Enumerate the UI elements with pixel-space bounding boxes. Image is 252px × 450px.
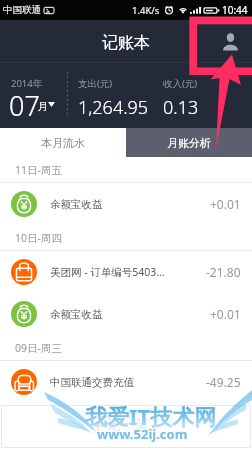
staticText: 2014年 xyxy=(11,77,43,90)
button[interactable]: 余额宝收益 xyxy=(0,293,252,335)
staticText: +0.01 xyxy=(210,306,241,322)
staticText: 07 xyxy=(9,87,40,124)
staticText: 本月流水 xyxy=(41,136,85,150)
staticText: 0.13 xyxy=(163,95,199,120)
staticText: -49.25 xyxy=(206,374,241,390)
button[interactable]: 月账分析 xyxy=(126,128,252,157)
staticText: 中国联通 xyxy=(3,4,41,16)
staticText: -21.80 xyxy=(206,264,241,280)
button[interactable]: 中国联通交费充值 xyxy=(0,361,252,403)
button[interactable]: 余额宝收益 xyxy=(0,183,252,225)
staticText: 11日-周五 xyxy=(15,163,62,177)
staticText: 余额宝收益 xyxy=(50,198,210,211)
staticText: 1.4K/s xyxy=(132,4,160,17)
staticText: 1,264.95 xyxy=(78,95,149,120)
staticText: 中国联通交费充值 xyxy=(50,376,206,389)
staticText: 10:44 xyxy=(222,3,248,17)
staticText: 记账本 xyxy=(102,33,150,53)
button[interactable]: 本月流水 xyxy=(0,128,126,157)
button[interactable]: 美团网 - 订单编号5403… xyxy=(0,251,252,293)
staticText: +0.01 xyxy=(210,196,241,212)
staticText: 月 xyxy=(38,100,48,113)
staticText: 我爱IT技术网 xyxy=(85,401,217,431)
staticText: 支出(元) xyxy=(78,77,113,90)
staticText: 月账分析 xyxy=(167,136,211,150)
staticText: 10日-周四 xyxy=(15,231,62,245)
button[interactable]: 2014年 xyxy=(0,63,67,128)
staticText: 09日-周三 xyxy=(15,341,62,355)
staticText: 记一笔 xyxy=(107,416,149,434)
staticText: 收入(元) xyxy=(163,77,198,90)
staticText: www.52ij.com xyxy=(97,425,188,443)
staticText: 余额宝收益 xyxy=(50,308,210,321)
staticText: 美团网 - 订单编号5403… xyxy=(50,265,206,279)
button[interactable]: Account xyxy=(209,20,252,63)
